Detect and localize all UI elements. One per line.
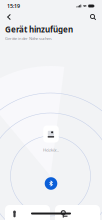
button[interactable]: Zurück xyxy=(3,11,15,23)
button[interactable]: Gefundenes Gerät xyxy=(5,205,50,220)
button[interactable]: Suchen xyxy=(87,11,99,23)
button[interactable]: Bluetooth einschalten xyxy=(45,177,57,190)
staticText: Gerät hinzufügen xyxy=(5,24,73,35)
staticText: 15:19 xyxy=(7,2,20,10)
staticText: Heizkör… xyxy=(43,147,59,153)
button[interactable]: Heizkörperthermostat xyxy=(43,125,59,142)
button[interactable]: Gefundenes Gerät xyxy=(55,205,100,220)
staticText: Geräte in der Nähe suchen. xyxy=(5,36,52,41)
